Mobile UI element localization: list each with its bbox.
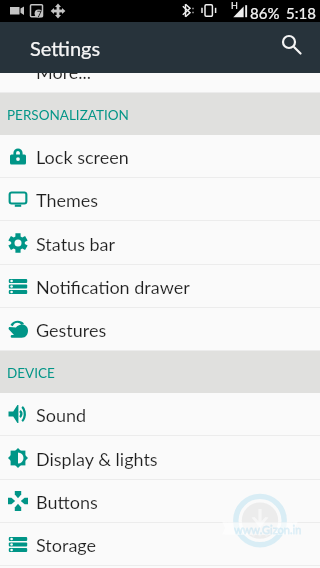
staticText: Display & lights — [36, 448, 158, 470]
staticText: Settings — [30, 36, 101, 60]
staticText: www.Gizon.in — [234, 523, 302, 536]
staticText: H — [231, 0, 238, 11]
staticText: Storage — [36, 534, 97, 556]
staticText: More... — [36, 61, 92, 83]
staticText: Buttons — [36, 491, 98, 513]
staticText: Sound — [36, 404, 87, 426]
button[interactable]: Notification drawer — [0, 265, 320, 308]
button[interactable]: Status bar — [0, 222, 320, 265]
button[interactable]: Gestures — [0, 308, 320, 351]
staticText: Gestures — [36, 319, 107, 341]
button[interactable]: Sound — [0, 393, 320, 436]
staticText: 86% — [250, 4, 280, 22]
button[interactable]: Lock screen — [0, 135, 320, 178]
staticText: 7 — [37, 9, 42, 19]
staticText: Notification drawer — [36, 276, 190, 298]
staticText: Status bar — [36, 233, 116, 255]
staticText: Themes — [36, 189, 99, 211]
staticText: DEVICE — [7, 365, 55, 381]
button[interactable]: Search — [272, 27, 314, 69]
button[interactable]: Buttons — [0, 480, 320, 523]
staticText: Lock screen — [36, 146, 129, 168]
staticText: PERSONALIZATION — [7, 107, 129, 123]
button[interactable]: More... — [0, 50, 320, 93]
staticText: 5:18 — [286, 4, 316, 22]
button[interactable]: Storage — [0, 523, 320, 566]
button[interactable]: Themes — [0, 178, 320, 221]
button[interactable]: Display & lights — [0, 437, 320, 480]
